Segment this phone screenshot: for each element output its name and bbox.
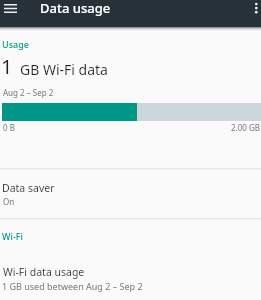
button[interactable]: Wi-Fi data usage xyxy=(0,258,261,300)
staticText: Aug 2 – Sep 2 xyxy=(3,87,54,98)
staticText: 1 xyxy=(1,53,13,80)
staticText: Wi-Fi data usage xyxy=(3,265,85,279)
staticText: Wi-Fi xyxy=(2,230,23,242)
staticText: 0 B xyxy=(3,122,15,133)
staticText: On xyxy=(3,196,15,207)
button[interactable]: More options xyxy=(247,0,261,19)
staticText: Data usage xyxy=(40,0,111,17)
staticText: 1 GB used between Aug 2 – Sep 2 xyxy=(2,280,143,292)
staticText: 2.00 GB xyxy=(231,122,260,133)
staticText: Usage xyxy=(2,38,29,50)
button[interactable]: Open navigation drawer xyxy=(0,0,21,19)
staticText: Data saver xyxy=(2,181,55,195)
staticText: GB Wi-Fi data xyxy=(20,60,108,79)
button[interactable]: Data saver xyxy=(0,169,261,218)
